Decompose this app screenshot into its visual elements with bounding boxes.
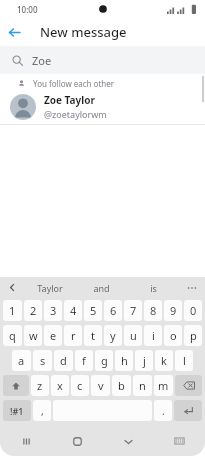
staticText: y [110, 328, 116, 343]
button[interactable]: Previous suggestions [0, 277, 24, 298]
button[interactable]: 8 [144, 300, 162, 321]
button[interactable]: f [75, 350, 93, 371]
button[interactable]: w [24, 325, 42, 346]
staticText: u [130, 328, 137, 343]
staticText: You follow each other [33, 78, 115, 89]
button[interactable]: Backspace [175, 375, 202, 396]
staticText: 5 [90, 303, 97, 318]
button[interactable]: j [135, 350, 153, 371]
staticText: k [161, 353, 167, 368]
button[interactable]: Home [52, 426, 103, 456]
staticText: v [98, 378, 104, 393]
button[interactable]: 4 [64, 300, 82, 321]
button[interactable]: 2 [24, 300, 42, 321]
button[interactable]: t [84, 325, 102, 346]
staticText: 9 [170, 303, 177, 318]
staticText: 3 [50, 303, 57, 318]
button[interactable]: k [155, 350, 173, 371]
staticText: @zoetaylorwm [44, 108, 107, 120]
staticText: m [158, 378, 169, 393]
staticText: 10:00 [17, 4, 38, 15]
button[interactable]: b [112, 375, 131, 396]
button[interactable]: 0 [184, 300, 202, 321]
button[interactable]: a [12, 350, 31, 371]
staticText: a [18, 353, 25, 368]
button[interactable]: Taylor [24, 277, 75, 298]
staticText: n [139, 378, 146, 393]
button[interactable]: q [3, 325, 22, 346]
button[interactable]: Shift [3, 375, 29, 396]
staticText: is [150, 282, 157, 294]
button[interactable]: i [144, 325, 162, 346]
button[interactable]: z [31, 375, 49, 396]
staticText: t [91, 328, 95, 343]
button[interactable]: Enter [174, 400, 202, 421]
button[interactable]: d [54, 350, 73, 371]
button[interactable]: p [184, 325, 202, 346]
button[interactable]: n [133, 375, 152, 396]
staticText: i [152, 328, 155, 343]
staticText: Zoe [32, 53, 52, 68]
button[interactable]: 3 [44, 300, 62, 321]
button[interactable]: Zoe Taylor [0, 92, 205, 124]
button[interactable]: , [33, 400, 51, 421]
button[interactable]: is [127, 277, 179, 298]
staticText: 8 [150, 303, 157, 318]
staticText: c [77, 378, 83, 393]
button[interactable]: 1 [3, 300, 22, 321]
staticText: s [40, 353, 46, 368]
staticText: p [190, 328, 197, 343]
button[interactable]: Recents [0, 426, 52, 456]
staticText: 2 [30, 303, 37, 318]
staticText: 6 [110, 303, 117, 318]
staticText: b [118, 378, 125, 393]
staticText: 1 [9, 303, 16, 318]
button[interactable]: Back [0, 18, 28, 46]
button[interactable]: Zoe [0, 46, 205, 74]
staticText: New message [40, 23, 127, 41]
button[interactable]: Hide keyboard [103, 426, 154, 456]
button[interactable]: s [33, 350, 52, 371]
button[interactable]: 6 [104, 300, 122, 321]
button[interactable]: r [64, 325, 82, 346]
staticText: d [60, 353, 67, 368]
button[interactable]: !#1 [3, 400, 31, 421]
button[interactable]: y [104, 325, 122, 346]
button[interactable]: . [154, 400, 172, 421]
button[interactable]: 7 [124, 300, 142, 321]
button[interactable]: More suggestions [179, 277, 205, 298]
staticText: !#1 [10, 405, 24, 417]
button[interactable]: Keyboard layout [154, 426, 205, 456]
button[interactable]: 5 [84, 300, 102, 321]
staticText: f [82, 353, 86, 368]
staticText: q [9, 328, 16, 343]
staticText: g [101, 353, 108, 368]
button[interactable]: l [175, 350, 193, 371]
staticText: 7 [130, 303, 137, 318]
button[interactable]: v [91, 375, 110, 396]
staticText: x [57, 378, 63, 393]
staticText: . [162, 404, 165, 418]
staticText: j [143, 353, 146, 368]
button[interactable]: u [124, 325, 142, 346]
button[interactable]: and [75, 277, 127, 298]
button[interactable]: o [164, 325, 182, 346]
button[interactable]: h [115, 350, 133, 371]
staticText: e [50, 328, 57, 343]
staticText: 4 [70, 303, 77, 318]
staticText: 0 [190, 303, 197, 318]
button[interactable]: m [154, 375, 173, 396]
staticText: l [183, 353, 186, 368]
staticText: , [41, 404, 44, 418]
staticText: o [170, 328, 177, 343]
button[interactable]: 9 [164, 300, 182, 321]
button[interactable]: x [51, 375, 69, 396]
staticText: and [93, 282, 110, 294]
button[interactable]: e [44, 325, 62, 346]
staticText: Zoe Taylor [44, 93, 95, 107]
staticText: r [71, 328, 76, 343]
staticText: Taylor [37, 282, 63, 294]
button[interactable]: g [95, 350, 113, 371]
button[interactable]: c [71, 375, 89, 396]
